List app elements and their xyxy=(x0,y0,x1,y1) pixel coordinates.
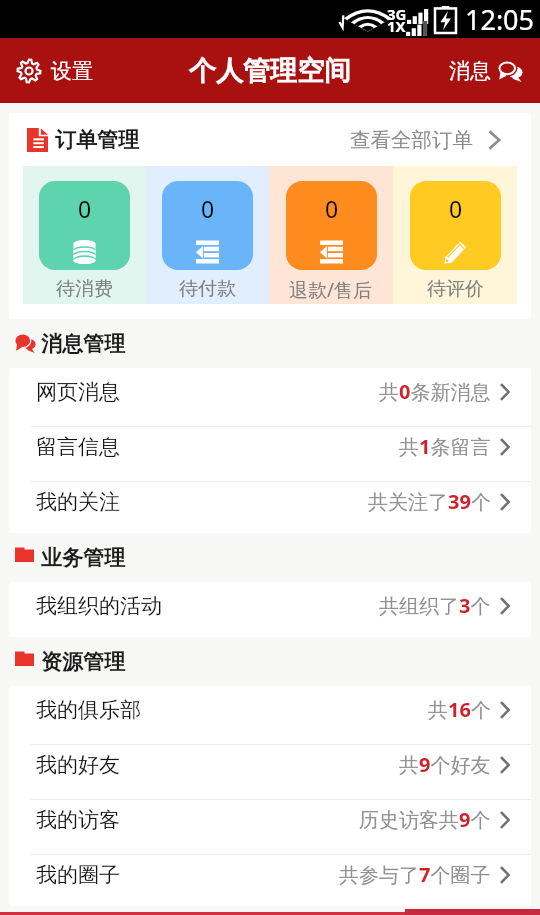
staticText: 0 xyxy=(201,193,215,224)
button[interactable]: 0 xyxy=(23,166,146,304)
staticText: 0 xyxy=(78,193,92,224)
staticText: 我组织的活动 xyxy=(36,593,162,619)
staticText: 留言信息 xyxy=(36,434,120,460)
button[interactable]: 我的俱乐部 xyxy=(9,686,531,741)
button[interactable]: 0 xyxy=(269,166,393,304)
staticText: 设置 xyxy=(51,58,93,84)
button[interactable]: 设置 xyxy=(0,50,105,92)
staticText: 共组织了3个 xyxy=(379,592,491,619)
staticText: 我的关注 xyxy=(36,489,120,515)
staticText: 历史访客共9个 xyxy=(359,806,491,833)
button[interactable]: 0 xyxy=(146,166,269,304)
staticText: 共关注了39个 xyxy=(368,488,491,515)
staticText: 待付款 xyxy=(179,277,236,301)
button[interactable]: 留言信息 xyxy=(9,423,531,478)
staticText: 消息管理 xyxy=(41,331,125,357)
button[interactable]: 网页消息 xyxy=(9,368,531,423)
staticText: 业务管理 xyxy=(41,545,125,571)
staticText: 共1条留言 xyxy=(399,433,491,460)
button[interactable]: 订单管理 xyxy=(9,113,531,166)
staticText: 查看全部订单 xyxy=(350,127,473,153)
button[interactable]: 我的好友 xyxy=(9,741,531,796)
staticText: 0 xyxy=(449,193,463,224)
button[interactable]: 我的关注 xyxy=(9,478,531,533)
staticText: 共16个 xyxy=(428,696,491,723)
staticText: 3G xyxy=(387,4,407,24)
staticText: 0 xyxy=(325,193,339,224)
button[interactable]: 我的访客 xyxy=(9,796,531,851)
staticText: 待评价 xyxy=(427,277,484,301)
button[interactable]: 消息 xyxy=(437,50,540,92)
staticText: 12:05 xyxy=(465,1,535,38)
button[interactable]: 我组织的活动 xyxy=(9,582,531,637)
button[interactable]: 我的圈子 xyxy=(9,851,531,906)
staticText: 我的俱乐部 xyxy=(36,697,141,723)
staticText: 个人管理空间 xyxy=(189,54,351,88)
staticText: 我的访客 xyxy=(36,807,120,833)
staticText: 待消费 xyxy=(56,277,113,301)
staticText: 我的圈子 xyxy=(36,862,120,888)
staticText: 共参与了7个圈子 xyxy=(339,861,491,888)
staticText: 消息 xyxy=(449,58,491,84)
staticText: 订单管理 xyxy=(55,127,139,153)
staticText: 我的好友 xyxy=(36,752,120,778)
staticText: 共0条新消息 xyxy=(379,378,491,405)
staticText: 资源管理 xyxy=(41,649,125,675)
staticText: 1X xyxy=(387,16,406,36)
staticText: 共9个好友 xyxy=(399,751,491,778)
staticText: 退款/售后 xyxy=(289,277,373,303)
button[interactable]: 0 xyxy=(393,166,517,304)
staticText: 网页消息 xyxy=(36,379,120,405)
